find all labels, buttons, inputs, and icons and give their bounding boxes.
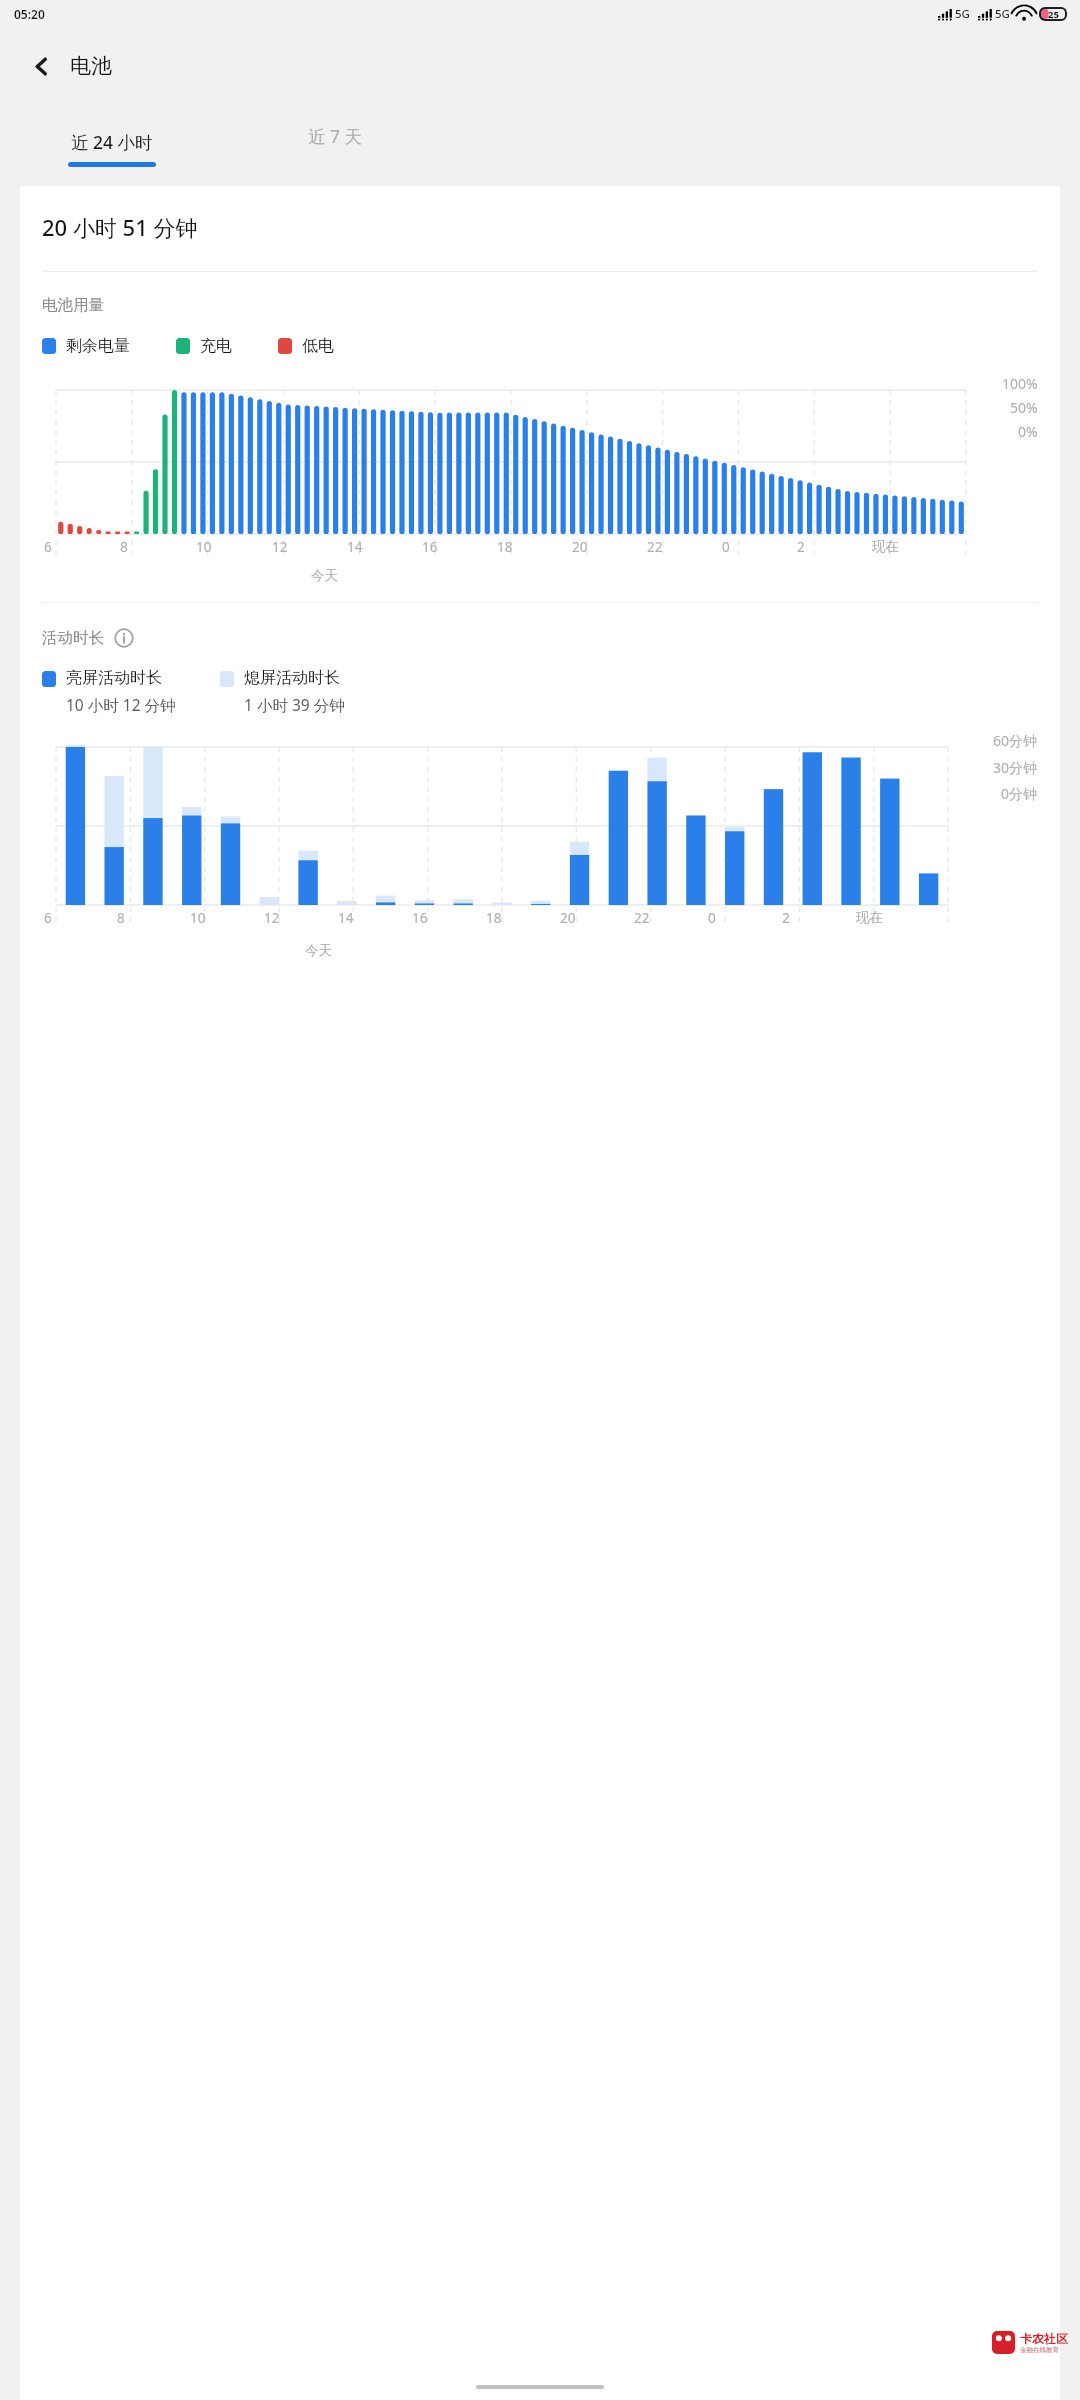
staticText: 电池用量 — [42, 295, 104, 315]
staticText: 5G — [955, 6, 970, 22]
staticText: 60分钟 — [993, 731, 1038, 750]
staticText: 0 — [722, 538, 730, 556]
staticText: 2 — [782, 909, 790, 927]
staticText: 0 — [708, 909, 716, 927]
staticText: 20 — [560, 909, 576, 927]
staticText: 现在 — [856, 909, 883, 926]
staticText: 充电 — [200, 336, 232, 356]
staticText: 今天 — [311, 567, 338, 584]
staticText: 5G — [995, 6, 1010, 22]
staticText: 22 — [634, 909, 650, 927]
button[interactable]: 近 7 天 — [308, 124, 363, 148]
staticText: 低电 — [302, 336, 334, 356]
staticText: 0分钟 — [1001, 784, 1038, 803]
button[interactable]: Info — [114, 628, 134, 648]
staticText: 12 — [264, 909, 280, 927]
staticText: 50% — [1010, 398, 1038, 417]
staticText: 8 — [117, 909, 125, 927]
staticText: 22 — [647, 538, 663, 556]
staticText: 14 — [338, 909, 354, 927]
staticText: 近 7 天 — [308, 124, 363, 148]
staticText: 今天 — [305, 942, 332, 959]
staticText: 10 — [190, 909, 206, 927]
staticText: 20 — [572, 538, 588, 556]
staticText: 熄屏活动时长 — [244, 668, 340, 688]
staticText: 16 — [422, 538, 438, 556]
staticText: 12 — [272, 538, 288, 556]
staticText: 10 — [196, 538, 212, 556]
staticText: 0% — [1018, 422, 1038, 441]
staticText: 05:20 — [14, 6, 45, 22]
staticText: 6 — [44, 909, 52, 927]
staticText: 25 — [1048, 8, 1059, 21]
staticText: 16 — [412, 909, 428, 927]
staticText: 100% — [1002, 374, 1038, 393]
staticText: 14 — [347, 538, 363, 556]
staticText: 2 — [797, 538, 805, 556]
staticText: 近 24 小时 — [71, 130, 153, 154]
staticText: 20 小时 51 分钟 — [42, 212, 198, 242]
button[interactable]: 近 24 小时 — [68, 130, 156, 167]
staticText: 18 — [497, 538, 513, 556]
staticText: 18 — [486, 909, 502, 927]
staticText: 亮屏活动时长 — [66, 668, 162, 688]
staticText: 10 小时 12 分钟 — [66, 694, 176, 715]
staticText: 6 — [44, 538, 52, 556]
staticText: 1 小时 39 分钟 — [244, 694, 345, 715]
staticText: 金融在线教育 — [1020, 2346, 1059, 2354]
staticText: 电池 — [70, 53, 112, 79]
button[interactable]: Back — [18, 43, 64, 89]
staticText: 剩余电量 — [66, 336, 130, 356]
staticText: 现在 — [872, 538, 899, 555]
staticText: 8 — [120, 538, 128, 556]
staticText: 卡农社区 — [1020, 2331, 1068, 2346]
staticText: 活动时长 — [42, 628, 104, 648]
staticText: 30分钟 — [993, 758, 1038, 777]
